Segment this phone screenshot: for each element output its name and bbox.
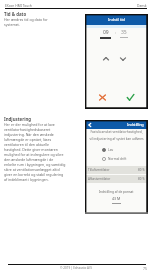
staticText: Lav bbox=[108, 148, 114, 152]
button[interactable]: Lav bbox=[85, 147, 148, 152]
staticText: Normal drift bbox=[108, 157, 127, 161]
staticText: Indstilling af de ponsat bbox=[99, 190, 134, 194]
button[interactable]: Increase bbox=[102, 55, 110, 63]
staticText: Indstilling bbox=[127, 122, 144, 127]
staticText: 80 % bbox=[138, 168, 145, 172]
staticText: EXcon HMI Touch bbox=[5, 3, 32, 7]
staticText: 35 bbox=[121, 29, 127, 36]
staticText: Afkastventilator bbox=[88, 177, 111, 181]
staticText: Her ændres tid og dato for systemet. bbox=[4, 17, 48, 27]
button[interactable]: Tilluftventilator bbox=[85, 166, 148, 174]
staticText: 80 % bbox=[138, 177, 145, 181]
button[interactable]: 09 bbox=[100, 29, 111, 39]
staticText: Tilluftventilator bbox=[88, 168, 110, 172]
staticText: : bbox=[115, 30, 117, 35]
staticText: 75 bbox=[143, 266, 147, 271]
staticText: © 2019 | Exhausto A/S bbox=[60, 266, 92, 270]
button[interactable]: Confirm bbox=[126, 93, 135, 102]
staticText: 43 M bbox=[112, 196, 121, 201]
staticText: Tid & dato bbox=[4, 11, 27, 17]
button[interactable]: Normal drift bbox=[85, 156, 148, 161]
button[interactable]: Back bbox=[87, 122, 93, 128]
button[interactable]: Afkastventilator bbox=[85, 175, 148, 183]
button[interactable]: 35 bbox=[118, 29, 129, 38]
button[interactable]: Cancel bbox=[98, 93, 107, 102]
staticText: Fastslå ønsket ventilatorhastighed, vil … bbox=[88, 130, 145, 141]
staticText: 09 bbox=[103, 29, 109, 36]
staticText: Dansk bbox=[137, 3, 147, 7]
staticText: Indjustering bbox=[4, 116, 32, 122]
button[interactable]: Decrease bbox=[119, 55, 127, 63]
staticText: Indstil tid bbox=[108, 17, 125, 22]
staticText: Her er der mulighed for at lave ventilat… bbox=[4, 122, 66, 182]
